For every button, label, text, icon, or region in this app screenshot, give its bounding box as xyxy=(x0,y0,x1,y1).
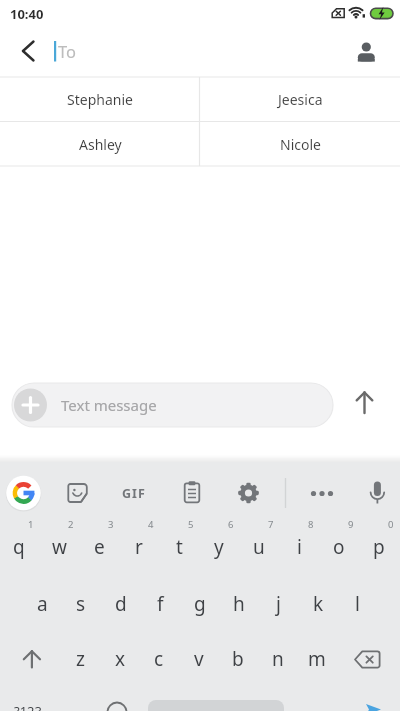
staticText: 3 xyxy=(108,518,114,531)
staticText: To xyxy=(58,40,77,62)
staticText: 0 xyxy=(388,518,394,531)
staticText: i xyxy=(297,534,302,560)
staticText: f xyxy=(157,591,164,617)
staticText: 9 xyxy=(348,518,354,531)
staticText: 8 xyxy=(308,518,314,531)
staticText: w xyxy=(52,534,67,560)
staticText: r xyxy=(135,534,143,560)
staticText: 4 xyxy=(148,518,154,531)
staticText: b xyxy=(232,646,244,672)
staticText: l xyxy=(355,591,360,617)
staticText: Stephanie xyxy=(67,90,133,109)
staticText: p xyxy=(373,534,385,560)
staticText: 5 xyxy=(188,518,194,531)
staticText: 6 xyxy=(228,518,234,531)
staticText: j xyxy=(276,591,281,617)
staticText: m xyxy=(308,646,326,672)
staticText: n xyxy=(272,646,284,672)
staticText: ?123 xyxy=(14,702,42,711)
staticText: x xyxy=(115,646,126,672)
staticText: k xyxy=(313,591,324,617)
staticText: Text message xyxy=(61,395,157,415)
staticText: e xyxy=(94,534,105,560)
staticText: GIF xyxy=(122,485,146,502)
staticText: Nicole xyxy=(280,135,321,154)
staticText: g xyxy=(194,591,206,617)
staticText: 2 xyxy=(68,518,74,531)
staticText: z xyxy=(76,646,85,672)
staticText: t xyxy=(176,534,183,560)
staticText: 10:40 xyxy=(10,5,44,23)
staticText: 1 xyxy=(28,518,34,531)
staticText: Jeesica xyxy=(278,90,323,109)
staticText: h xyxy=(233,591,245,617)
staticText: c xyxy=(154,646,164,672)
staticText: q xyxy=(13,534,25,560)
staticText: u xyxy=(253,534,265,560)
staticText: y xyxy=(214,534,224,560)
staticText: a xyxy=(37,591,48,617)
staticText: v xyxy=(194,646,204,672)
staticText: Ashley xyxy=(79,135,122,154)
staticText: 7 xyxy=(268,518,274,531)
staticText: d xyxy=(115,591,127,617)
staticText: s xyxy=(76,591,86,617)
staticText: o xyxy=(333,534,345,560)
